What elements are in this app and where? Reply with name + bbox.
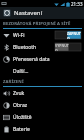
button[interactable]: Bluetooth — [0, 41, 84, 53]
staticText: 21:33 — [71, 1, 83, 7]
staticText: ZAŘÍZENÍ — [3, 79, 24, 85]
staticText: Baterie — [13, 126, 30, 133]
button[interactable]: Baterie — [0, 123, 84, 135]
staticText: Obraz — [13, 102, 28, 109]
staticText: Úložiště — [13, 114, 32, 121]
staticText: Další… — [13, 68, 29, 75]
staticText: Wi-Fi — [13, 32, 25, 39]
staticText: Nastavení — [14, 9, 43, 17]
button[interactable]: Wi-Fi — [0, 29, 84, 41]
staticText: Přenesená data — [13, 56, 50, 63]
staticText: ZAPNUTO — [67, 31, 81, 39]
staticText: Bluetooth — [13, 44, 37, 51]
staticText: BEZDRÁTOVÁ PŘIPOJENÍ A SÍTĚ — [3, 21, 71, 27]
staticText: VYPNUTO — [55, 43, 69, 51]
button[interactable]: Přenesená data — [0, 53, 84, 65]
button[interactable]: Zvuk — [0, 87, 84, 99]
staticText: Zvuk — [13, 90, 25, 97]
button[interactable]: Obraz — [0, 99, 84, 111]
button[interactable]: Zapnuto — [55, 31, 81, 39]
button[interactable]: Úložiště — [0, 111, 84, 123]
button[interactable]: Vypnuto — [55, 43, 81, 51]
button[interactable]: Další… — [0, 65, 84, 77]
button[interactable]: Nastavení — [0, 7, 84, 19]
